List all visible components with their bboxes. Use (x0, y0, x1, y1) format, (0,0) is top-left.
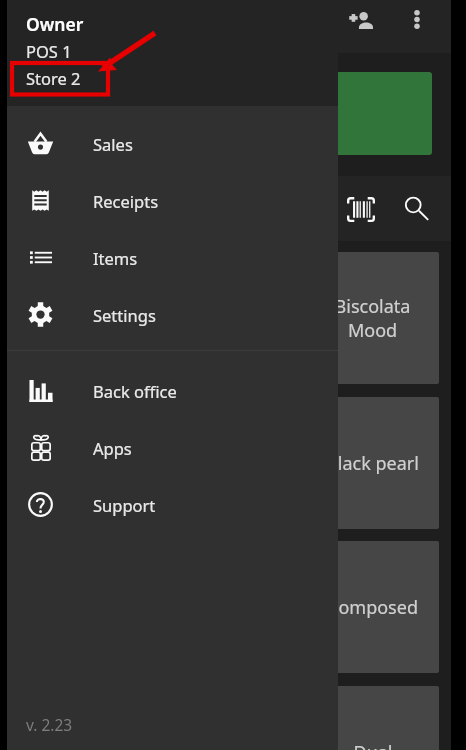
button[interactable]: Sales (7, 115, 338, 172)
staticText: Black pearl (326, 451, 419, 476)
button[interactable]: Owner (7, 0, 338, 106)
staticText: Support (93, 494, 156, 516)
button[interactable]: Scan barcode (335, 183, 387, 235)
button[interactable]: Back office (7, 362, 338, 419)
staticText: Store 2 (26, 67, 81, 89)
staticText: Sales (93, 133, 133, 155)
button[interactable]: Black pearl (306, 397, 439, 529)
staticText: Owner (26, 12, 84, 36)
button[interactable]: Items (7, 229, 338, 286)
staticText: Composed (327, 595, 418, 620)
button[interactable]: Biscolata Mood (306, 252, 439, 384)
button[interactable]: More options (394, 0, 440, 42)
staticText: Settings (93, 304, 156, 326)
staticText: Apps (93, 437, 132, 459)
button[interactable] (137, 72, 432, 155)
button[interactable]: Dual (306, 686, 439, 750)
staticText: POS 1 (26, 40, 72, 62)
staticText: Dual (353, 740, 393, 750)
button[interactable]: Apps (7, 419, 338, 476)
staticText: Items (93, 247, 138, 269)
staticText: Receipts (93, 190, 159, 212)
button[interactable]: Receipts (7, 172, 338, 229)
staticText: Biscolata Mood (312, 294, 433, 342)
button[interactable]: Add customer (338, 0, 384, 43)
button[interactable]: Settings (7, 286, 338, 343)
button[interactable]: Support (7, 476, 338, 533)
button[interactable]: Composed (306, 541, 439, 673)
staticText: v. 2.23 (26, 714, 73, 735)
button[interactable]: Search (391, 183, 443, 235)
staticText: Back office (93, 380, 177, 402)
